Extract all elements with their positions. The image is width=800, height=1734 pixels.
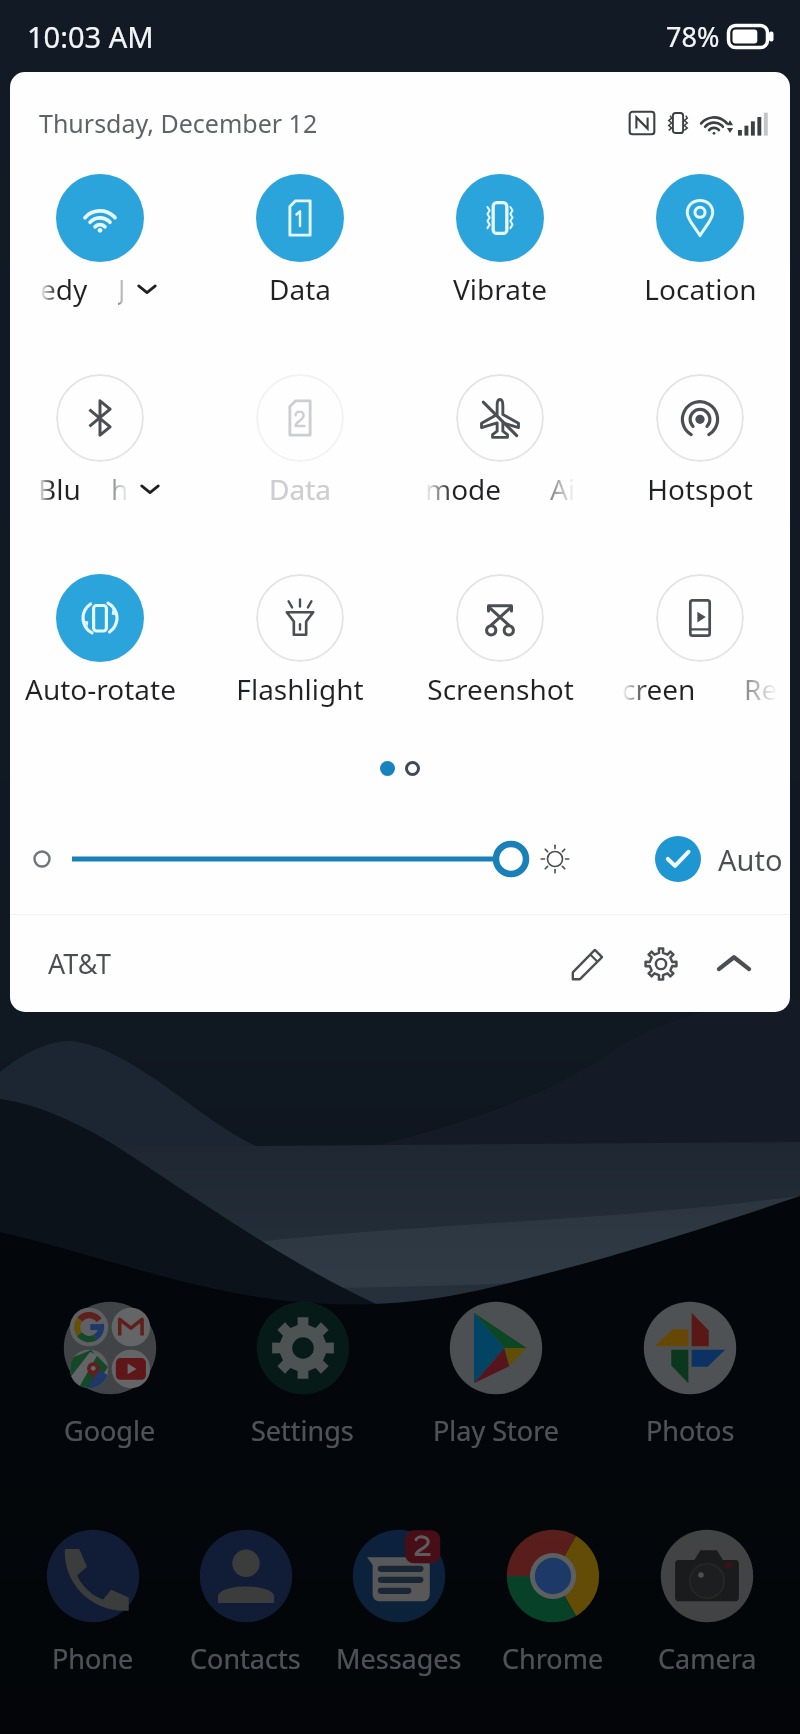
button[interactable]: Auto <box>655 836 783 882</box>
staticText: Flashlight <box>236 670 364 708</box>
button[interactable]: Hotspot <box>600 373 790 573</box>
button[interactable]: edy <box>10 173 200 373</box>
button[interactable]: Settings <box>632 935 690 993</box>
button[interactable]: Settings <box>206 1293 399 1453</box>
staticText: Re <box>744 670 778 708</box>
button[interactable]: Vibrate <box>400 173 600 373</box>
staticText: Thursday, December 12 <box>39 106 318 140</box>
staticText: J <box>118 270 126 308</box>
staticText: mode <box>425 470 502 508</box>
staticText: AT&T <box>48 945 111 982</box>
staticText: Phone <box>52 1640 134 1677</box>
button[interactable]: Edit tiles <box>559 935 617 993</box>
button[interactable]: Messages <box>322 1521 476 1681</box>
button[interactable]: Data <box>200 173 400 373</box>
button[interactable]: Contacts <box>169 1521 322 1681</box>
button[interactable]: Play Store <box>399 1293 593 1453</box>
staticText: Blu <box>38 470 81 508</box>
staticText: creen <box>622 670 696 708</box>
staticText: 10:03 AM <box>27 17 154 56</box>
staticText: 78% <box>666 18 720 55</box>
staticText: Auto-rotate <box>25 670 176 708</box>
staticText: Location <box>644 270 757 308</box>
staticText: edy <box>40 270 88 308</box>
staticText: Contacts <box>190 1640 301 1677</box>
staticText: h <box>111 470 129 508</box>
staticText: Messages <box>336 1640 462 1677</box>
button[interactable]: Camera <box>630 1521 784 1681</box>
staticText: Hotspot <box>647 470 753 508</box>
button[interactable]: Auto-rotate <box>10 573 200 773</box>
staticText: Data <box>269 470 331 508</box>
staticText: Photos <box>646 1412 735 1449</box>
staticText: Play Store <box>433 1412 559 1449</box>
button[interactable]: Chrome <box>476 1521 630 1681</box>
button[interactable]: Phone <box>16 1521 169 1681</box>
staticText: Auto <box>718 840 783 879</box>
button[interactable]: Data <box>200 373 400 573</box>
button[interactable]: creen <box>600 573 790 773</box>
button[interactable]: Flashlight <box>200 573 400 773</box>
staticText: Google <box>64 1412 156 1449</box>
staticText: Chrome <box>502 1640 604 1677</box>
button[interactable]: mode <box>400 373 600 573</box>
staticText: Settings <box>251 1412 354 1449</box>
button[interactable]: Screenshot <box>400 573 600 773</box>
button[interactable]: Google <box>13 1293 206 1453</box>
staticText: Data <box>269 270 331 308</box>
button[interactable]: Photos <box>593 1293 787 1453</box>
button[interactable]: Location <box>600 173 790 373</box>
staticText: Ai <box>550 470 576 508</box>
button[interactable] <box>10 830 790 888</box>
button[interactable]: Collapse <box>705 935 763 993</box>
button[interactable]: Blu <box>10 373 200 573</box>
staticText: Camera <box>658 1640 757 1677</box>
staticText: Vibrate <box>453 270 547 308</box>
staticText: Screenshot <box>427 670 574 708</box>
